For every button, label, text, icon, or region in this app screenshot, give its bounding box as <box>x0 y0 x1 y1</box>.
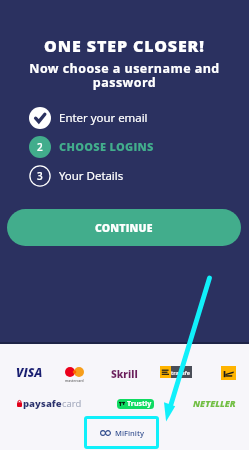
staticText: paysafe <box>23 397 62 410</box>
staticText: Your Details <box>59 168 124 184</box>
staticText: VISA <box>16 364 43 380</box>
staticText: Enter your email <box>59 110 148 126</box>
button[interactable]: Enter your email <box>29 106 229 129</box>
staticText: Now choose a username and password <box>12 60 237 91</box>
staticText: CHOOSE LOGINS <box>59 139 154 154</box>
staticText: transfer <box>171 369 192 376</box>
staticText: MiFinity <box>115 428 144 438</box>
staticText: ONE STEP CLOSER! <box>44 35 205 57</box>
button[interactable]: 2 <box>29 135 229 158</box>
staticText: Skrill <box>111 367 138 381</box>
staticText: card <box>62 397 82 410</box>
staticText: mastercard <box>65 378 84 383</box>
staticText: 3 <box>37 169 43 183</box>
staticText: Trustly <box>127 399 152 409</box>
button[interactable]: 3 <box>29 164 229 187</box>
button[interactable]: CONTINUE <box>7 209 241 246</box>
staticText: 2 <box>37 140 43 154</box>
staticText: CONTINUE <box>95 221 153 235</box>
staticText: NETELLER <box>193 397 236 409</box>
button[interactable]: MiFinity <box>84 416 159 449</box>
